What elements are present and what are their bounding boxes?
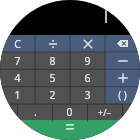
staticText: 5 — [49, 71, 56, 85]
button[interactable]: +/– — [87, 103, 122, 120]
button[interactable]: Backspace — [105, 35, 140, 52]
button[interactable]: . — [18, 103, 52, 120]
button[interactable]: 6 — [70, 69, 105, 86]
staticText: 2 — [49, 88, 56, 102]
button[interactable]: Clear — [0, 35, 35, 52]
staticText: 7 — [14, 54, 21, 68]
button[interactable]: Minus — [105, 52, 140, 69]
staticText: 8 — [49, 54, 56, 68]
button[interactable]: Multiply — [70, 35, 105, 52]
button[interactable]: 0 — [52, 103, 87, 120]
button[interactable]: 2 — [35, 86, 70, 103]
staticText: +/– — [98, 106, 111, 118]
button[interactable]: 9 — [70, 52, 105, 69]
staticText: 6 — [84, 71, 91, 85]
staticText: 4 — [14, 71, 21, 85]
button[interactable]: ( ) — [105, 86, 140, 103]
button[interactable]: 8 — [35, 52, 70, 69]
button[interactable]: Plus — [105, 69, 140, 86]
button[interactable]: 7 — [0, 52, 35, 69]
button[interactable]: 5 — [35, 69, 70, 86]
staticText: 9 — [84, 54, 91, 68]
staticText: 1 — [14, 88, 21, 102]
staticText: 3 — [84, 88, 91, 102]
staticText: 0 — [66, 105, 73, 119]
button[interactable]: Equals — [0, 120, 140, 140]
button[interactable]: Divide — [35, 35, 70, 52]
staticText: C — [14, 37, 21, 51]
staticText: ( ) — [118, 88, 127, 102]
button[interactable]: 1 — [0, 86, 35, 103]
button[interactable]: 4 — [0, 69, 35, 86]
button[interactable]: 3 — [70, 86, 105, 103]
staticText: . — [34, 105, 37, 119]
